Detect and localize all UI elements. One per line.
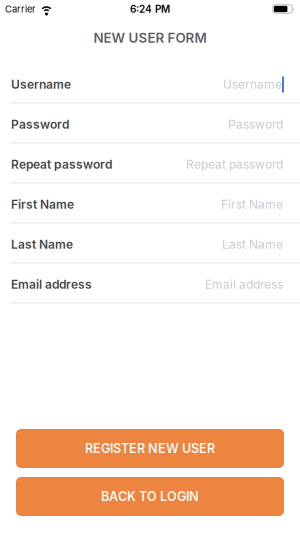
staticText: 6:24 PM [130,3,170,15]
staticText: Repeat password [186,157,283,172]
staticText: Email address [11,277,92,292]
staticText: First Name [221,197,283,212]
staticText: Carrier [5,3,36,15]
staticText: Last Name [222,237,283,252]
button[interactable]: Username [0,63,300,103]
staticText: Last Name [11,237,73,252]
staticText: Username [223,77,282,92]
button[interactable]: BACK TO LOGIN [16,477,284,516]
staticText: Password [228,117,283,132]
staticText: First Name [11,197,74,212]
staticText: Username [11,77,71,92]
staticText: Repeat password [11,157,112,172]
staticText: Email address [205,277,283,292]
staticText: NEW USER FORM [93,30,206,46]
staticText: Password [11,117,69,132]
button[interactable]: Email address [0,263,300,303]
button[interactable]: First Name [0,183,300,223]
button[interactable]: REGISTER NEW USER [16,429,284,468]
button[interactable]: Password [0,103,300,143]
button[interactable]: Repeat password [0,143,300,183]
staticText: BACK TO LOGIN [101,489,199,504]
button[interactable]: Last Name [0,223,300,263]
staticText: REGISTER NEW USER [85,441,215,456]
